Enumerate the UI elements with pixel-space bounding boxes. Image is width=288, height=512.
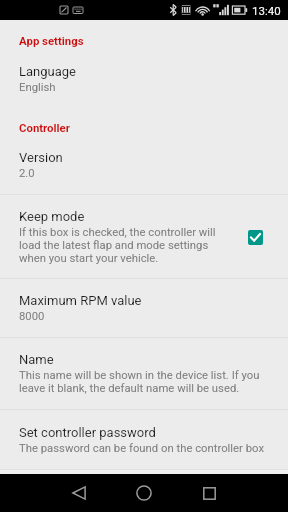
button[interactable]: Language bbox=[0, 47, 288, 99]
staticText: Set controller password bbox=[19, 425, 156, 440]
staticText: Controller bbox=[19, 121, 70, 134]
button[interactable]: Keep mode bbox=[0, 195, 288, 278]
staticText: 8000 bbox=[19, 310, 45, 323]
button[interactable]: Recent apps bbox=[185, 474, 233, 512]
staticText: If this box is checked, the controller w… bbox=[19, 226, 229, 265]
staticText: Version bbox=[19, 150, 63, 165]
button[interactable]: Version bbox=[0, 134, 288, 194]
staticText: 2.0 bbox=[19, 167, 35, 180]
staticText: Keep mode bbox=[19, 209, 85, 224]
staticText: The password can be found on the control… bbox=[19, 442, 265, 455]
button[interactable]: Keep mode, checked bbox=[248, 230, 263, 245]
staticText: Language bbox=[19, 64, 76, 79]
staticText: Name bbox=[19, 352, 54, 367]
button[interactable]: Home bbox=[120, 474, 168, 512]
button[interactable]: Back bbox=[55, 474, 103, 512]
button[interactable]: Set controller password bbox=[0, 410, 288, 469]
staticText: 13:40 bbox=[252, 4, 281, 17]
staticText: This name will be shown in the device li… bbox=[19, 369, 265, 395]
staticText: Maximum RPM value bbox=[19, 293, 142, 308]
staticText: App settings bbox=[19, 34, 84, 47]
button[interactable]: Maximum RPM value bbox=[0, 279, 288, 337]
staticText: English bbox=[19, 81, 56, 94]
button[interactable]: Name bbox=[0, 338, 288, 409]
